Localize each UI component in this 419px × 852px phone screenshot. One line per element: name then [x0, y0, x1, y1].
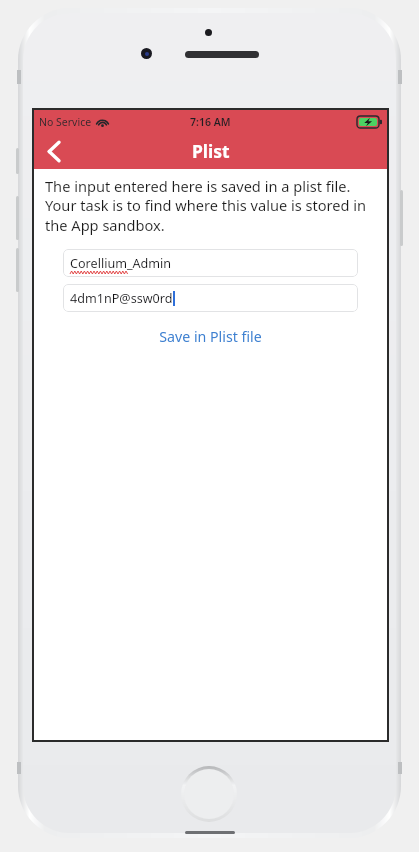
staticText: Save in Plist file — [159, 327, 262, 346]
button[interactable]: Corellium_Admin — [63, 249, 358, 277]
button[interactable]: Home — [181, 766, 237, 822]
button[interactable]: Save in Plist file — [159, 327, 262, 346]
staticText: Plist — [192, 139, 230, 163]
button[interactable]: 4dm1nP@ssw0rd — [63, 284, 358, 312]
staticText: 4dm1nP@ssw0rd — [70, 290, 173, 307]
staticText: The input entered here is saved in a pli… — [45, 176, 379, 236]
button[interactable]: Back — [34, 133, 74, 169]
staticText: No Service — [39, 115, 92, 129]
staticText: Corellium_Admin — [70, 255, 172, 272]
staticText: 7:16 AM — [190, 115, 231, 129]
